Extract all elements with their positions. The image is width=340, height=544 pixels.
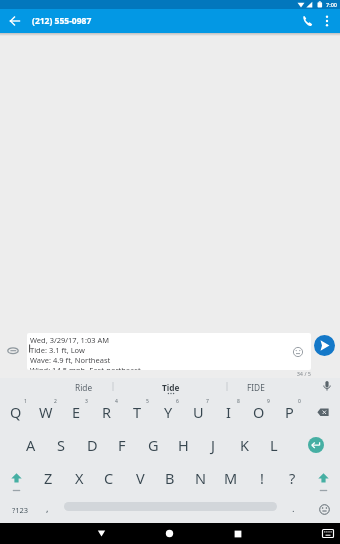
button[interactable]: , xyxy=(32,497,62,519)
button[interactable]: C xyxy=(94,467,124,489)
button[interactable]: . xyxy=(278,497,308,519)
button[interactable]: K xyxy=(229,434,259,456)
button[interactable]: E xyxy=(61,401,91,423)
button[interactable]: B xyxy=(155,467,185,489)
button[interactable]: F xyxy=(107,434,137,456)
staticText: G xyxy=(148,435,159,455)
staticText: A xyxy=(26,435,36,455)
button[interactable]: Z xyxy=(33,467,63,489)
button[interactable]: H xyxy=(168,434,198,456)
staticText: 2 xyxy=(54,398,57,405)
staticText: 4 xyxy=(115,398,118,405)
button[interactable] xyxy=(91,523,112,544)
button[interactable]: ? xyxy=(277,467,307,489)
staticText: Z xyxy=(44,468,53,488)
button[interactable]: G xyxy=(138,434,168,456)
button[interactable] xyxy=(314,335,335,356)
staticText: T xyxy=(133,402,142,422)
staticText: M xyxy=(224,468,238,488)
button[interactable] xyxy=(297,11,317,31)
button[interactable] xyxy=(227,523,248,544)
button[interactable]: I xyxy=(213,401,243,423)
button[interactable] xyxy=(318,523,338,543)
staticText: 34 / 5 xyxy=(280,370,311,377)
staticText: S xyxy=(57,435,65,455)
staticText: Tide xyxy=(162,382,180,393)
button[interactable]: ?123 xyxy=(5,499,35,521)
staticText: (212) 555-0987 xyxy=(32,15,92,27)
staticText: 3 xyxy=(85,398,88,405)
staticText: E xyxy=(72,402,81,422)
button[interactable]: O xyxy=(244,401,274,423)
staticText: D xyxy=(87,435,98,455)
button[interactable] xyxy=(321,15,333,27)
button[interactable] xyxy=(308,437,324,453)
staticText: Y xyxy=(164,402,173,422)
staticText: FIDE xyxy=(247,382,265,393)
button[interactable] xyxy=(159,523,180,544)
button[interactable]: P xyxy=(274,401,304,423)
staticText: U xyxy=(193,402,204,422)
staticText: X xyxy=(75,468,84,488)
button[interactable]: R xyxy=(92,401,122,423)
staticText: B xyxy=(165,468,175,488)
staticText: J xyxy=(211,435,215,455)
staticText: 0 xyxy=(298,398,301,405)
button[interactable]: Ride xyxy=(56,380,112,395)
button[interactable] xyxy=(314,378,340,395)
staticText: F xyxy=(118,435,126,455)
staticText: K xyxy=(240,435,249,455)
button[interactable]: Y xyxy=(153,401,183,423)
staticText: ? xyxy=(289,468,296,488)
button[interactable]: Q xyxy=(1,401,31,423)
staticText: Wind: 14.5 mph, East-northeast xyxy=(30,365,141,370)
button[interactable]: S xyxy=(46,434,76,456)
button[interactable]: N xyxy=(186,467,216,489)
staticText: I xyxy=(226,402,231,422)
button[interactable] xyxy=(312,497,336,521)
button[interactable]: D xyxy=(77,434,107,456)
staticText: Q xyxy=(10,402,22,422)
button[interactable]: Tide xyxy=(143,380,199,395)
button[interactable]: ! xyxy=(247,467,277,489)
button[interactable]: FIDE xyxy=(228,380,284,395)
staticText: , xyxy=(46,502,49,515)
staticText: 5 xyxy=(146,398,149,405)
staticText: 7:00 xyxy=(326,1,337,8)
staticText: L xyxy=(270,435,278,455)
staticText: P xyxy=(285,402,294,422)
staticText: 7 xyxy=(206,398,209,405)
button[interactable]: Wed, 3/29/17, 1:03 AM xyxy=(27,333,311,370)
staticText: Wed, 3/29/17, 1:03 AM xyxy=(30,335,110,345)
button[interactable]: M xyxy=(216,467,246,489)
staticText: Ride xyxy=(75,382,93,393)
button[interactable] xyxy=(2,342,24,364)
staticText: N xyxy=(195,468,207,488)
staticText: 6 xyxy=(176,398,179,405)
staticText: W xyxy=(39,402,53,422)
button[interactable]: W xyxy=(31,401,61,423)
button[interactable]: T xyxy=(122,401,152,423)
button[interactable] xyxy=(3,9,27,33)
staticText: V xyxy=(136,468,145,488)
button[interactable]: U xyxy=(183,401,213,423)
staticText: 8 xyxy=(237,398,240,405)
staticText: . xyxy=(292,502,295,515)
button[interactable]: V xyxy=(125,467,155,489)
staticText: 9 xyxy=(267,398,270,405)
button[interactable]: X xyxy=(64,467,94,489)
button[interactable] xyxy=(311,471,336,497)
button[interactable]: A xyxy=(16,434,46,456)
staticText: ?123 xyxy=(12,505,29,515)
button[interactable]: L xyxy=(259,434,289,456)
staticText: R xyxy=(102,402,112,422)
button[interactable] xyxy=(4,471,29,497)
staticText: O xyxy=(253,402,265,422)
button[interactable]: J xyxy=(198,434,228,456)
staticText: Tide: 3.1 ft, Low xyxy=(30,345,85,355)
staticText: H xyxy=(178,435,189,455)
staticText: Wave: 4.9 ft, Northeast xyxy=(30,355,111,365)
staticText: 1 xyxy=(24,398,27,405)
button[interactable] xyxy=(310,403,335,421)
